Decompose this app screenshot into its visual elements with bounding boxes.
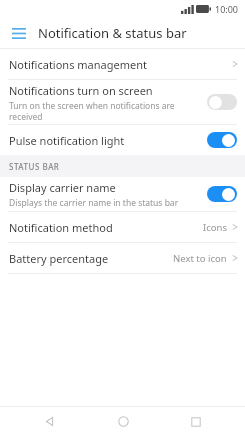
staticText: Battery percentage [9, 251, 173, 266]
button[interactable]: Display carrier name [0, 177, 245, 211]
button[interactable]: On [207, 132, 237, 148]
button[interactable]: On [207, 186, 237, 202]
button[interactable]: Back [24, 407, 74, 436]
staticText: Icons [203, 221, 227, 234]
staticText: Display carrier name [9, 180, 116, 195]
staticText: Next to icon [173, 252, 227, 265]
staticText: STATUS BAR [9, 161, 60, 172]
button[interactable]: Notification method [0, 212, 245, 242]
button[interactable]: Menu [8, 22, 30, 44]
staticText: Notifications management [9, 57, 231, 72]
button[interactable]: Notifications turn on screen [0, 80, 245, 124]
staticText: Notifications turn on screen [9, 83, 153, 98]
button[interactable]: Battery percentage [0, 243, 245, 273]
button[interactable]: Recents [171, 407, 221, 436]
staticText: Pulse notification light [9, 133, 125, 148]
staticText: Turn on the screen when notifications ar… [9, 100, 175, 122]
button[interactable]: Notifications management [0, 49, 245, 79]
button[interactable]: Off [207, 94, 237, 110]
button[interactable]: Pulse notification light [0, 125, 245, 155]
staticText: Displays the carrier name in the status … [9, 197, 179, 209]
staticText: 10:00 [215, 3, 239, 15]
staticText: Notification & status bar [38, 24, 187, 42]
staticText: Notification method [9, 220, 203, 235]
button[interactable]: Home [98, 407, 148, 436]
